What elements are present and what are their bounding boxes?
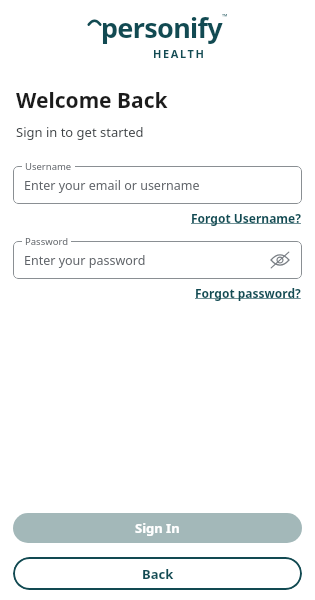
button[interactable]: Show password [269,249,291,271]
staticText: Forgot password? [195,285,301,301]
staticText: Sign in to get started [16,123,144,141]
staticText: personify [101,9,222,46]
button[interactable]: Enter your email or username [13,166,302,204]
staticText: ™ [222,12,228,22]
staticText: Enter your email or username [24,177,291,194]
staticText: Back [142,565,174,583]
staticText: Password [25,235,68,248]
staticText: Welcome Back [16,86,168,115]
staticText: Username [25,160,72,173]
button[interactable]: Enter your password [13,241,302,279]
staticText: Sign In [135,519,180,537]
button[interactable]: Back [13,557,302,590]
staticText: HEALTH [153,46,206,61]
staticText: Forgot Username? [191,210,301,226]
button[interactable]: Sign In [13,513,302,543]
button[interactable]: Forgot Username? [191,210,301,226]
button[interactable]: Forgot password? [195,285,301,301]
staticText: Enter your password [24,252,269,269]
